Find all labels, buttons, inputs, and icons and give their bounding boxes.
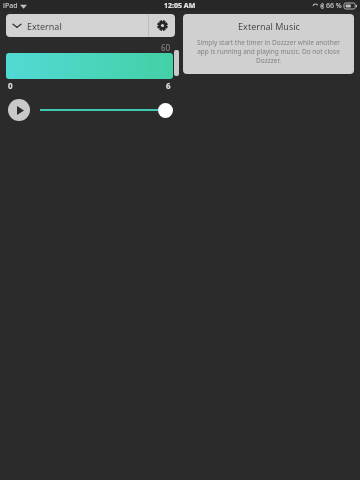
button[interactable]: Settings (149, 14, 175, 37)
button[interactable]: External (6, 14, 148, 37)
button[interactable]: Play (8, 99, 30, 121)
staticText: 6 (166, 80, 171, 90)
staticText: External (27, 20, 62, 32)
staticText: 66 % (326, 1, 342, 11)
button[interactable]: External Music (183, 14, 354, 74)
staticText: 0 (8, 80, 13, 90)
staticText: External Music (238, 20, 300, 32)
staticText: iPad (3, 1, 18, 11)
button[interactable]: Volume (40, 97, 173, 123)
button[interactable]: Duration (6, 53, 173, 79)
staticText: Simply start the timer in Dozzzer while … (192, 38, 345, 65)
button[interactable]: Duration handle (174, 50, 179, 76)
staticText: 60 (161, 42, 171, 52)
staticText: 12:05 AM (164, 1, 196, 11)
